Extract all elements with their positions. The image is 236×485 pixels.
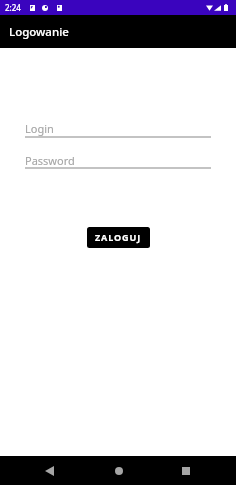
button[interactable]: Back: [34, 456, 65, 485]
staticText: 2:24: [5, 2, 21, 13]
staticText: Login: [25, 121, 54, 136]
staticText: Password: [25, 153, 75, 168]
staticText: Logowanie: [9, 24, 69, 40]
button[interactable]: [25, 149, 211, 170]
button[interactable]: ZALOGUJ: [87, 227, 150, 248]
button[interactable]: Recents: [170, 456, 201, 485]
button[interactable]: Home: [103, 456, 134, 485]
staticText: ZALOGUJ: [95, 231, 142, 243]
button[interactable]: [25, 117, 211, 138]
